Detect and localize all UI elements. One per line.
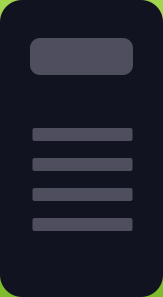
button[interactable]: Row 2 — [32, 158, 132, 171]
button[interactable]: Row 1 — [32, 128, 132, 141]
button[interactable]: Row 3 — [32, 188, 132, 201]
button[interactable]: Row 4 — [32, 218, 132, 231]
button[interactable]: Header card — [30, 38, 133, 75]
